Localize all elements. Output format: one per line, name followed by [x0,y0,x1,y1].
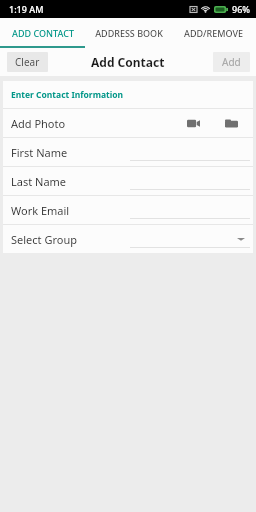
button[interactable]: Add Photo [3,109,253,137]
staticText: Add Contact [91,54,165,70]
button[interactable]: First Name [3,138,253,166]
staticText: ADD CONTACT [12,27,74,39]
button[interactable]: Clear [7,52,48,72]
staticText: ADDRESS BOOK [95,27,163,39]
staticText: ADD/REMOVE [184,27,243,39]
staticText: Select Group [11,232,77,247]
button[interactable]: Add [213,52,250,72]
button[interactable]: Last Name [3,167,253,195]
staticText: Add Photo [11,116,66,131]
button[interactable]: Take photo with camera [183,113,203,133]
staticText: 1:19 AM [9,3,44,15]
staticText: Work Email [11,203,70,218]
button[interactable]: ADDRESS BOOK [86,18,171,48]
staticText: Clear [15,55,40,69]
staticText: First Name [11,145,68,160]
button[interactable]: ADD CONTACT [0,18,86,48]
button[interactable]: Work Email [3,196,253,224]
button[interactable]: Choose photo from gallery [221,113,241,133]
staticText: Last Name [11,174,67,189]
button[interactable]: Select Group [3,225,253,253]
staticText: Add [222,55,241,69]
button[interactable]: ADD/REMOVE [171,18,256,48]
staticText: Enter Contact Information [11,89,124,101]
staticText: 96% [232,3,250,15]
